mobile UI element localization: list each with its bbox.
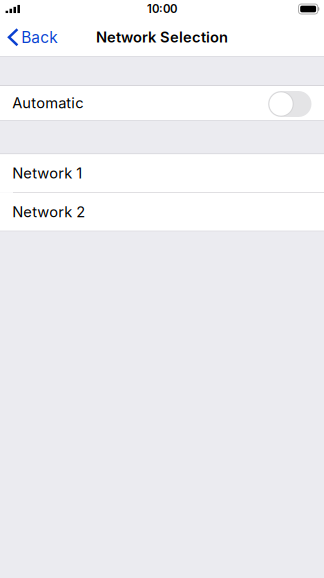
button[interactable]: Back <box>0 22 65 53</box>
staticText: 10:00 <box>147 2 177 16</box>
staticText: Network Selection <box>96 28 228 46</box>
staticText: Back <box>21 28 57 47</box>
button[interactable]: Automatic, off <box>268 89 311 117</box>
button[interactable]: Network 2 <box>0 193 324 231</box>
staticText: Automatic <box>12 94 83 112</box>
staticText: Network 2 <box>12 203 85 221</box>
button[interactable]: Network 1 <box>0 154 324 192</box>
staticText: Network 1 <box>12 164 82 182</box>
